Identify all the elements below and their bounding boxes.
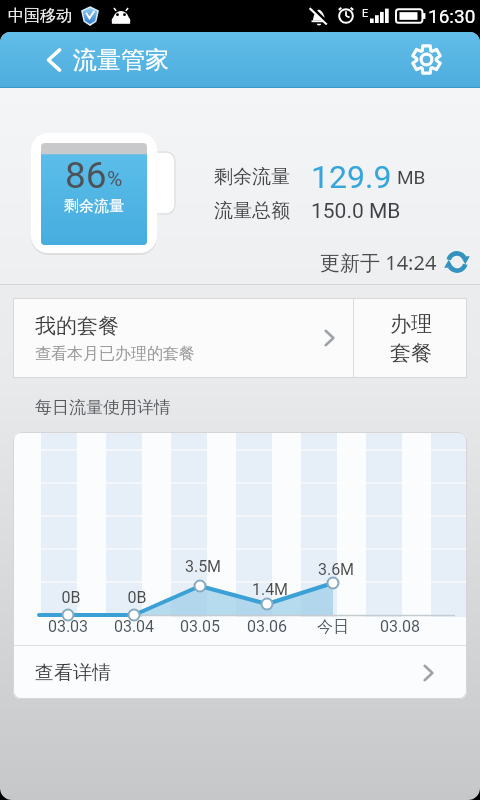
staticText: 剩余流量 <box>214 165 290 189</box>
staticText: 150.0 MB <box>311 199 401 224</box>
staticText: 中国移动 <box>8 6 72 26</box>
staticText: 03.08 <box>370 617 430 636</box>
button[interactable]: 我的套餐 <box>13 298 467 378</box>
button[interactable]: 更新于 14:24 <box>320 247 470 277</box>
staticText: 每日流量使用详情 <box>35 397 171 418</box>
button[interactable] <box>410 43 443 76</box>
staticText: 查看详情 <box>35 661 111 685</box>
staticText: 我的套餐 <box>35 313 119 339</box>
staticText: 流量管家 <box>73 45 169 75</box>
staticText: 0B <box>107 588 167 607</box>
staticText: 剩余流量 <box>64 197 124 216</box>
staticText: 流量总额 <box>214 199 290 223</box>
staticText: 3.5M <box>173 557 233 576</box>
staticText: 03.03 <box>38 617 98 636</box>
staticText: 今日 <box>303 617 363 637</box>
staticText: 查看本月已办理的套餐 <box>35 344 195 364</box>
button[interactable]: 查看详情 <box>13 646 467 699</box>
staticText: 16:30 <box>428 5 476 27</box>
staticText: 办理 <box>390 311 432 337</box>
staticText: % <box>107 167 123 192</box>
staticText: 03.06 <box>237 617 297 636</box>
staticText: 1.4M <box>240 580 300 599</box>
staticText: 129.9 <box>311 158 392 196</box>
staticText: E <box>362 7 369 20</box>
staticText: 86 <box>65 154 107 197</box>
staticText: 03.05 <box>170 617 230 636</box>
staticText: 0B <box>41 588 101 607</box>
staticText: 03.04 <box>104 617 164 636</box>
staticText: 3.6M <box>306 560 366 579</box>
button[interactable]: 办理 <box>354 298 467 378</box>
staticText: MB <box>397 166 426 188</box>
staticText: 套餐 <box>390 340 432 366</box>
button[interactable] <box>47 48 61 72</box>
staticText: 更新于 14:24 <box>320 249 437 276</box>
